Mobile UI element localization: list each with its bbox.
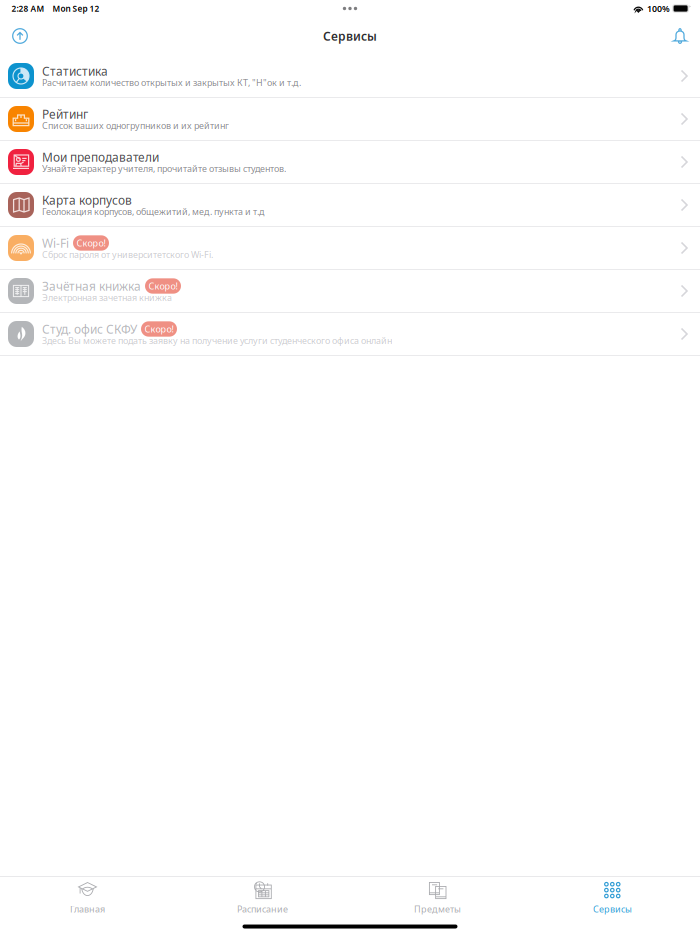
button[interactable]: Студ. офис СКФУ (0, 313, 700, 356)
staticText: Расписание (237, 903, 288, 915)
staticText: Предметы (414, 903, 461, 915)
staticText: Геолокация корпусов, общежитий, мед. пун… (42, 205, 264, 218)
staticText: Скоро! (144, 323, 173, 335)
button[interactable]: Статистика (0, 55, 700, 98)
button[interactable]: Зачётная книжка (0, 270, 700, 313)
staticText: Список ваших одногрупников и их рейтинг (42, 119, 229, 132)
button[interactable]: Сервисы (525, 877, 700, 919)
button[interactable]: Главная (0, 877, 175, 919)
staticText: Сброс пароля от университетского Wi-Fi. (42, 248, 213, 261)
button[interactable]: Notifications (665, 21, 695, 51)
button[interactable]: Мои преподаватели (0, 141, 700, 184)
staticText: Узнайте характер учителя, прочитайте отз… (42, 162, 286, 175)
staticText: Зачётная книжка (42, 278, 141, 294)
staticText: Скоро! (76, 237, 105, 249)
staticText: Mon Sep 12 (52, 3, 99, 14)
button[interactable]: Расписание (175, 877, 350, 919)
button[interactable]: Wi-Fi (0, 227, 700, 270)
staticText: 2:28 AM (11, 3, 44, 14)
staticText: Здесь Вы можете подать заявку на получен… (42, 334, 392, 347)
staticText: Рейтинг (42, 106, 88, 122)
button[interactable]: Scroll to top (5, 21, 35, 51)
staticText: 100% (647, 2, 670, 14)
staticText: Сервисы (323, 28, 377, 44)
staticText: Расчитаем количество открытых и закрытых… (42, 76, 301, 89)
staticText: Карта корпусов (42, 192, 132, 208)
staticText: Скоро! (148, 280, 177, 292)
button[interactable]: Карта корпусов (0, 184, 700, 227)
button[interactable]: Предметы (350, 877, 525, 919)
staticText: Студ. офис СКФУ (42, 321, 137, 337)
staticText: Статистика (42, 63, 108, 79)
staticText: Мои преподаватели (42, 149, 159, 165)
staticText: Главная (70, 903, 105, 915)
button[interactable]: Рейтинг (0, 98, 700, 141)
staticText: Сервисы (593, 903, 632, 915)
staticText: Wi-Fi (42, 235, 69, 251)
staticText: Электронная зачетная книжка (42, 291, 172, 304)
